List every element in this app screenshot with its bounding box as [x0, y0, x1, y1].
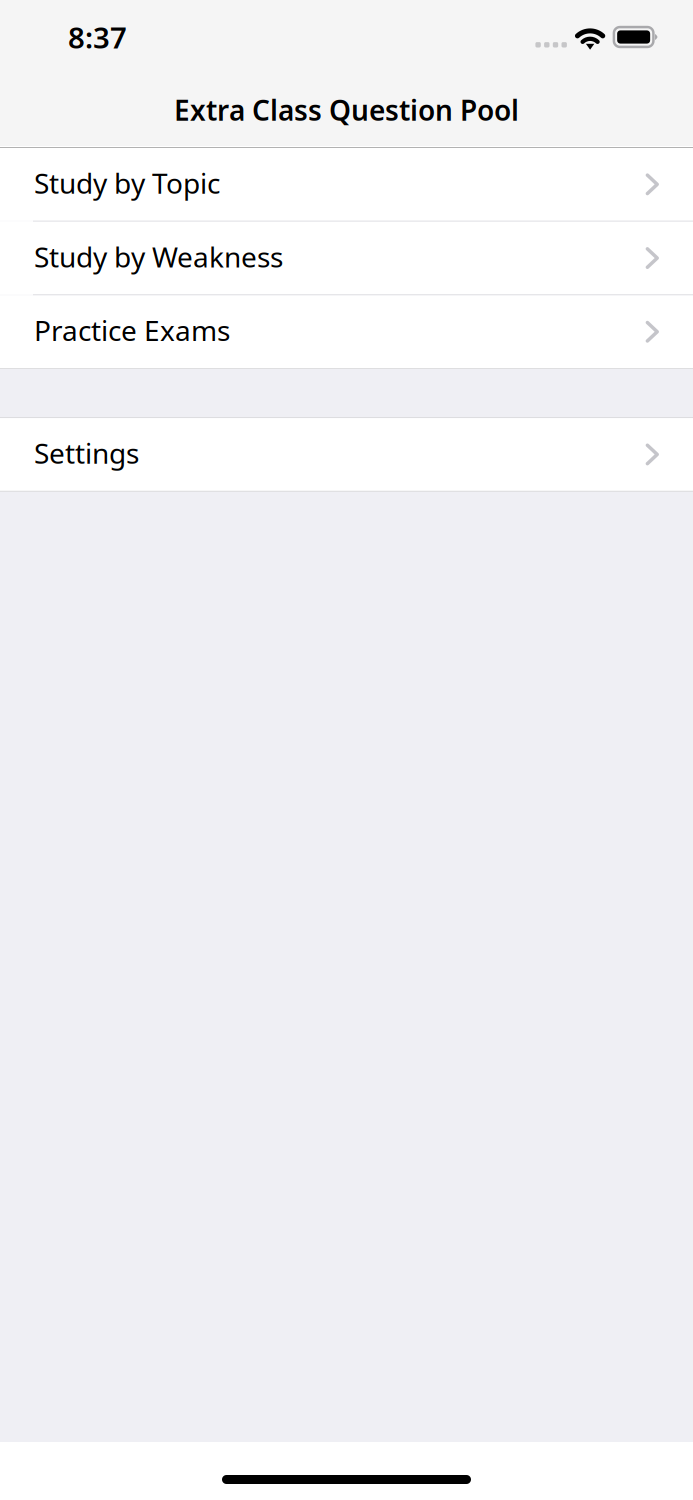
- staticText: Study by Weakness: [34, 238, 283, 275]
- button[interactable]: Study by Topic: [0, 148, 693, 221]
- staticText: Settings: [34, 434, 139, 472]
- staticText: Study by Topic: [34, 164, 220, 201]
- staticText: 8:37: [68, 17, 127, 56]
- staticText: Extra Class Question Pool: [174, 91, 519, 129]
- button[interactable]: Settings: [0, 418, 693, 491]
- staticText: Practice Exams: [34, 312, 230, 349]
- button[interactable]: Study by Weakness: [0, 222, 693, 294]
- button[interactable]: Practice Exams: [0, 295, 693, 368]
